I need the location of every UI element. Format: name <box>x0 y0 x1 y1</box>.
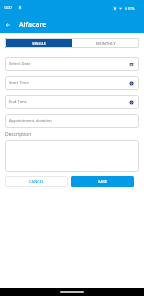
button[interactable]: Select Date <box>5 57 139 71</box>
button[interactable]: Start Time <box>5 76 139 90</box>
button[interactable] <box>5 140 139 172</box>
staticText: Description <box>5 131 32 138</box>
other: Pick time <box>130 101 133 104</box>
staticText: MONTHLY <box>96 41 116 46</box>
staticText: Alfacare <box>19 20 47 30</box>
button[interactable]: Back <box>2 19 14 31</box>
button[interactable]: MONTHLY <box>72 38 139 48</box>
staticText: 12:37 <box>4 6 12 10</box>
staticText: Select Date <box>9 61 31 67</box>
staticText: SAVE <box>98 179 108 184</box>
button[interactable]: End Time <box>5 95 139 109</box>
button[interactable]: CANCEL <box>5 176 68 187</box>
staticText: Appointment duration <box>9 118 52 124</box>
button[interactable]: Appointment duration <box>5 114 139 128</box>
staticText: CANCEL <box>29 179 45 184</box>
staticText: End Time <box>9 99 27 105</box>
button[interactable]: SINGLE <box>5 38 72 48</box>
staticText: SINGLE <box>32 41 46 46</box>
other: Pick time <box>130 82 133 85</box>
staticText: 81% <box>128 6 135 10</box>
button[interactable]: SAVE <box>71 176 134 187</box>
staticText: Start Time <box>9 80 29 86</box>
other: Pick date <box>130 63 133 66</box>
